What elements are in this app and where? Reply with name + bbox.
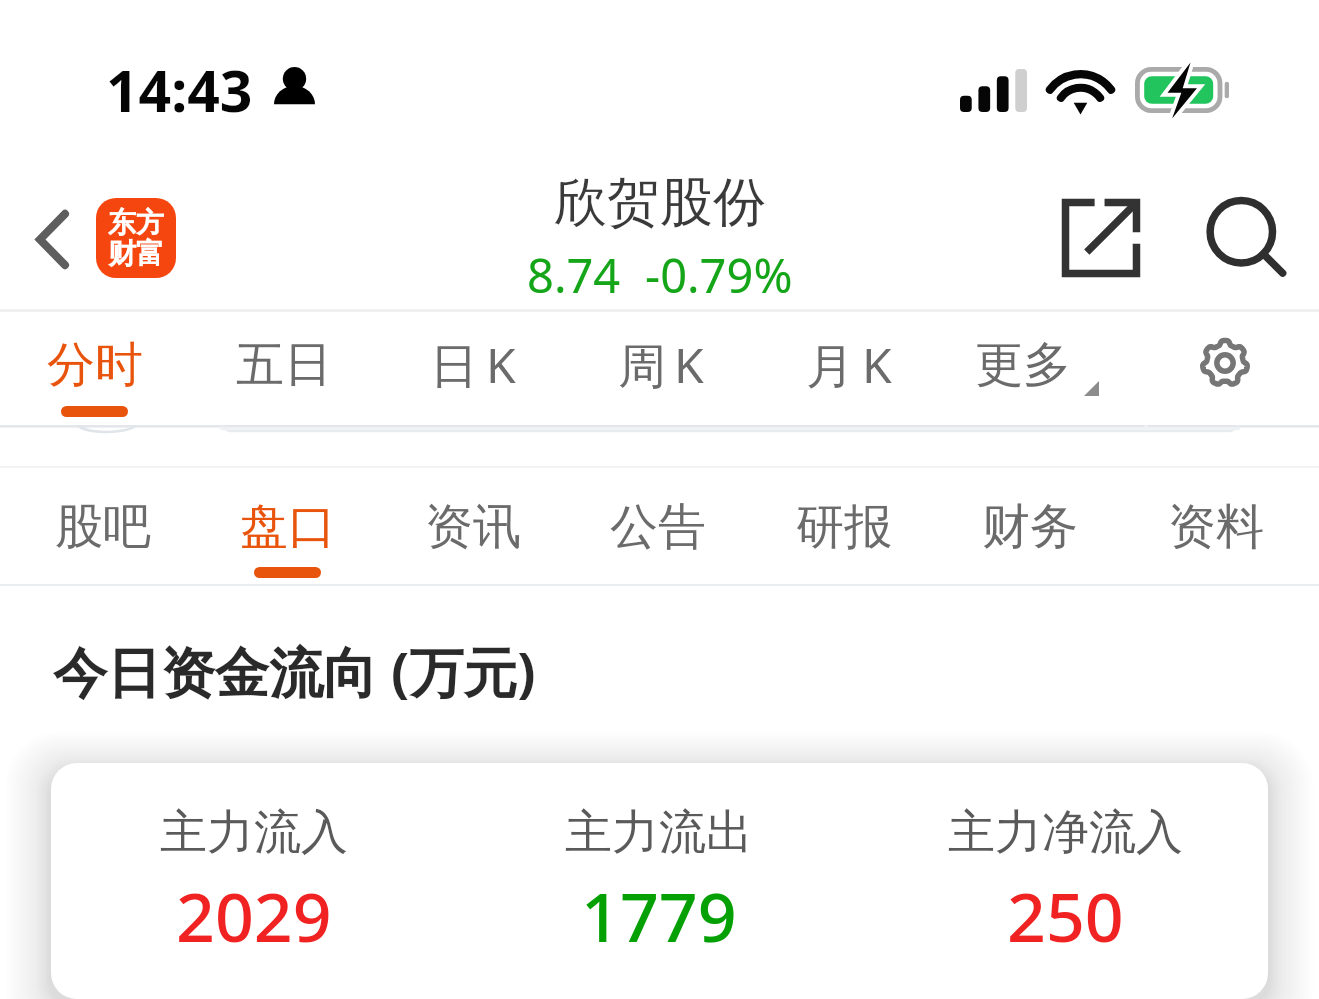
- staticText: 盘口: [240, 497, 336, 557]
- staticText: 资料: [1168, 497, 1264, 557]
- button[interactable]: 周 K: [567, 312, 755, 425]
- staticText: 今日资金流向 (万元): [53, 634, 536, 708]
- button[interactable]: Share: [1046, 183, 1156, 293]
- staticText: 主力流入: [160, 803, 348, 862]
- button[interactable]: 月 K: [755, 312, 943, 425]
- button[interactable]: 盘口: [195, 468, 380, 584]
- staticText: 主力净流入: [948, 803, 1183, 862]
- button[interactable]: Back: [16, 199, 88, 271]
- staticText: 更多: [975, 335, 1071, 395]
- staticText: 2029: [176, 869, 332, 962]
- staticText: 8.74: [527, 243, 621, 307]
- button[interactable]: Settings: [1131, 312, 1319, 425]
- staticText: 股吧: [55, 497, 151, 557]
- staticText: 分时: [47, 335, 143, 395]
- staticText: 月 K: [806, 332, 892, 398]
- staticText: 财务: [982, 497, 1078, 557]
- button[interactable]: 分时: [0, 312, 189, 425]
- staticText: 1779: [581, 869, 737, 962]
- staticText: 研报: [796, 497, 892, 557]
- button[interactable]: Search: [1191, 183, 1301, 293]
- staticText: 250: [1007, 869, 1124, 962]
- button[interactable]: 东方 财富: [96, 198, 176, 278]
- button[interactable]: 股吧: [10, 468, 195, 584]
- staticText: 五日: [236, 335, 332, 395]
- button[interactable]: 资料: [1123, 468, 1309, 584]
- button[interactable]: 五日: [189, 312, 378, 425]
- staticText: 14:43: [106, 51, 253, 129]
- button[interactable]: 更多: [943, 312, 1131, 425]
- button[interactable]: 研报: [751, 468, 937, 584]
- button[interactable]: 主力流入: [51, 763, 1268, 999]
- staticText: 东方 财富: [108, 205, 164, 271]
- staticText: 主力流出: [565, 803, 753, 862]
- button[interactable]: 资讯: [380, 468, 565, 584]
- button[interactable]: 公告: [565, 468, 751, 584]
- staticText: 资讯: [425, 497, 521, 557]
- staticText: -0.79%: [645, 243, 793, 307]
- button[interactable]: 日 K: [378, 312, 567, 425]
- staticText: 欣贺股份: [554, 169, 766, 236]
- staticText: 公告: [610, 497, 706, 557]
- staticText: 周 K: [618, 332, 704, 398]
- staticText: 日 K: [430, 332, 516, 398]
- button[interactable]: 财务: [937, 468, 1123, 584]
